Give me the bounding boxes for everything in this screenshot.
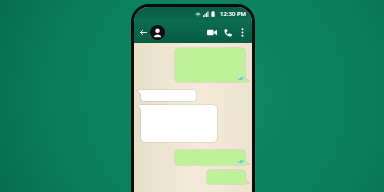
button[interactable] [207, 170, 249, 184]
button[interactable]: Voice call [221, 26, 234, 39]
button[interactable]: Video call [205, 26, 218, 39]
button[interactable]: Contact profile [150, 25, 165, 40]
button[interactable] [175, 48, 249, 82]
button[interactable]: More options [237, 27, 248, 38]
staticText: 12:30 PM [220, 10, 247, 18]
button[interactable] [137, 105, 217, 142]
button[interactable]: Back [138, 27, 148, 37]
button[interactable] [137, 90, 196, 101]
button[interactable] [175, 150, 249, 165]
